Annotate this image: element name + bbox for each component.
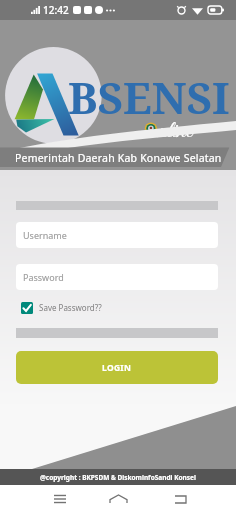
staticText: Save Password?? [39, 302, 102, 313]
button[interactable]: Recents [40, 486, 79, 512]
staticText: @copyright : BKPSDM & DiskominfoSandi Ko… [40, 473, 196, 482]
staticText: Username [23, 229, 67, 241]
button[interactable]: Home [98, 486, 138, 512]
staticText: Pemerintah Daerah Kab Konawe Selatan [15, 151, 222, 165]
staticText: Password [23, 271, 64, 283]
button[interactable]: Back [160, 486, 200, 512]
staticText: BSENSI [68, 67, 230, 127]
button[interactable]: LOGIN [16, 351, 218, 384]
staticText: LOGIN [102, 362, 132, 374]
button[interactable]: Password [16, 264, 218, 290]
button[interactable]: Save Password?? [16, 298, 102, 317]
button[interactable]: Username [16, 222, 218, 248]
staticText: 12:42 [43, 3, 69, 17]
staticText: nline [158, 115, 193, 148]
